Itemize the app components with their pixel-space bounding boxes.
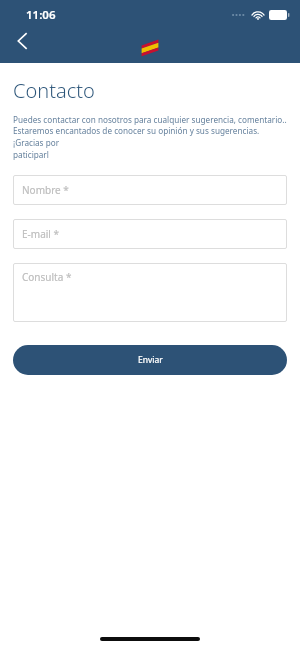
other: Logo — [140, 39, 160, 53]
staticText: Nombre * — [22, 183, 69, 197]
staticText: E-mail * — [22, 227, 60, 241]
staticText: Enviar — [138, 354, 163, 366]
staticText: Consulta * — [22, 270, 72, 284]
button[interactable]: Enviar — [13, 345, 287, 375]
staticText: Contacto — [13, 77, 95, 104]
button[interactable]: Consulta * — [13, 263, 287, 322]
button[interactable]: Back — [0, 19, 44, 63]
staticText: Puedes contactar con nosotros para cualq… — [13, 114, 287, 161]
button[interactable]: Nombre * — [13, 175, 287, 205]
staticText: 11:06 — [26, 7, 56, 23]
button[interactable]: E-mail * — [13, 219, 287, 249]
